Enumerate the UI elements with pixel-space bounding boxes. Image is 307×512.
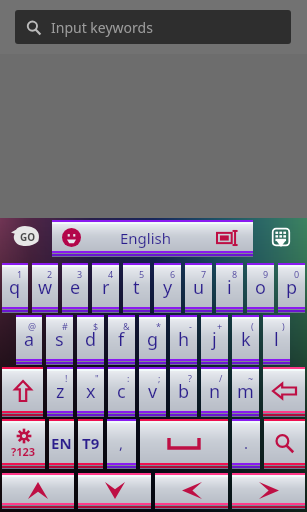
staticText: (: [251, 320, 254, 332]
button[interactable]: T9: [78, 419, 103, 469]
staticText: &: [123, 320, 130, 332]
staticText: c: [117, 379, 126, 404]
button[interactable]: Input keywords: [15, 10, 291, 44]
staticText: m: [237, 379, 254, 404]
staticText: v: [148, 379, 158, 404]
button[interactable]: k: [232, 315, 259, 365]
staticText: x: [86, 379, 96, 404]
button[interactable]: d: [77, 315, 104, 365]
staticText: GO: [20, 230, 36, 244]
staticText: a: [24, 327, 35, 352]
button[interactable]: t: [123, 263, 150, 313]
staticText: 2: [47, 268, 53, 280]
staticText: ": [95, 372, 99, 384]
button[interactable]: Search: [264, 419, 305, 469]
button[interactable]: f: [108, 315, 135, 365]
staticText: +: [217, 320, 223, 332]
staticText: q: [9, 275, 21, 300]
button[interactable]: g: [139, 315, 166, 365]
staticText: -: [189, 320, 192, 332]
staticText: 1: [17, 268, 23, 280]
button[interactable]: m: [232, 367, 259, 417]
staticText: #: [62, 320, 68, 332]
button[interactable]: y: [154, 263, 181, 313]
staticText: 9: [263, 268, 269, 280]
button[interactable]: Backspace: [263, 367, 305, 417]
staticText: 7: [201, 268, 207, 280]
staticText: p: [286, 275, 298, 300]
button[interactable]: w: [32, 263, 58, 313]
staticText: n: [209, 379, 221, 404]
staticText: !: [65, 372, 68, 384]
staticText: ?123: [11, 444, 36, 459]
staticText: /: [219, 372, 223, 384]
button[interactable]: English: [90, 220, 202, 257]
button[interactable]: o: [247, 263, 274, 313]
staticText: $: [93, 320, 99, 332]
staticText: Input keywords: [51, 18, 153, 37]
staticText: T9: [82, 433, 100, 453]
staticText: f: [118, 327, 125, 352]
button[interactable]: u: [185, 263, 212, 313]
staticText: .: [244, 433, 249, 453]
button[interactable]: Space: [140, 419, 228, 469]
staticText: u: [193, 275, 205, 300]
button[interactable]: q: [2, 263, 28, 313]
staticText: y: [163, 275, 173, 300]
staticText: j: [212, 327, 217, 352]
button[interactable]: Layout: [202, 220, 253, 257]
staticText: s: [55, 327, 64, 352]
button[interactable]: Left: [155, 473, 228, 509]
staticText: 4: [108, 268, 114, 280]
button[interactable]: p: [278, 263, 305, 313]
staticText: z: [56, 379, 65, 404]
staticText: 6: [170, 268, 176, 280]
button[interactable]: ,: [107, 419, 136, 469]
button[interactable]: v: [139, 367, 166, 417]
button[interactable]: EN: [49, 419, 74, 469]
button[interactable]: c: [108, 367, 135, 417]
staticText: ;: [158, 372, 161, 384]
staticText: 8: [232, 268, 238, 280]
staticText: ): [282, 320, 285, 332]
staticText: g: [147, 327, 159, 352]
staticText: :: [127, 372, 130, 384]
staticText: h: [178, 327, 190, 352]
button[interactable]: Emoji: [52, 220, 90, 257]
button[interactable]: x: [77, 367, 104, 417]
staticText: t: [133, 275, 140, 300]
button[interactable]: j: [201, 315, 228, 365]
staticText: b: [178, 379, 190, 404]
button[interactable]: Symbols: [2, 419, 45, 469]
staticText: English: [120, 228, 172, 248]
staticText: 0: [294, 268, 300, 280]
staticText: o: [255, 275, 266, 300]
button[interactable]: Right: [232, 473, 305, 509]
button[interactable]: l: [263, 315, 290, 365]
button[interactable]: Down: [78, 473, 151, 509]
button[interactable]: Shift: [2, 367, 43, 417]
staticText: @: [28, 320, 37, 332]
button[interactable]: r: [92, 263, 119, 313]
button[interactable]: .: [232, 419, 260, 469]
staticText: r: [102, 275, 110, 300]
button[interactable]: a: [16, 315, 42, 365]
staticText: ?: [188, 372, 192, 384]
staticText: l: [274, 327, 279, 352]
button[interactable]: b: [170, 367, 197, 417]
staticText: ,: [119, 433, 124, 453]
staticText: ~: [248, 372, 254, 384]
button[interactable]: h: [170, 315, 197, 365]
button[interactable]: i: [216, 263, 243, 313]
staticText: e: [70, 275, 81, 300]
button[interactable]: z: [47, 367, 73, 417]
button[interactable]: Hide keyboard: [272, 228, 290, 246]
staticText: 5: [139, 268, 145, 280]
staticText: d: [85, 327, 97, 352]
button[interactable]: Up: [2, 473, 74, 509]
button[interactable]: s: [46, 315, 73, 365]
button[interactable]: Go: [11, 225, 40, 247]
button[interactable]: n: [201, 367, 228, 417]
button[interactable]: e: [62, 263, 88, 313]
staticText: EN: [51, 433, 72, 453]
